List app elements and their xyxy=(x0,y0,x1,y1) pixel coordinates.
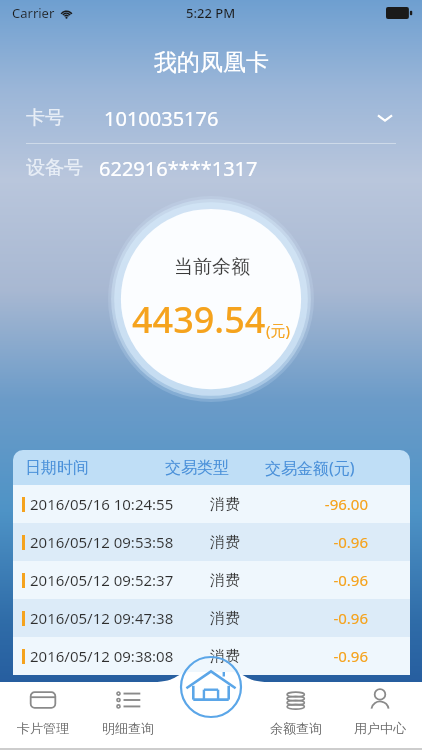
staticText: 卡片管理 xyxy=(17,720,69,736)
staticText: -0.96 xyxy=(280,570,368,590)
button[interactable]: 余额查询 xyxy=(254,672,338,750)
button[interactable]: 用户中心 xyxy=(338,672,422,750)
staticText: -0.96 xyxy=(280,646,368,666)
staticText: 2016/05/12 09:52:37 xyxy=(30,570,210,590)
staticText: 卡号 xyxy=(26,106,64,130)
staticText: -0.96 xyxy=(280,608,368,628)
staticText: 2016/05/12 09:53:58 xyxy=(30,532,210,552)
button[interactable]: 卡号 xyxy=(0,95,422,141)
staticText: 2016/05/16 10:24:55 xyxy=(30,494,210,514)
staticText: 交易金额(元) xyxy=(265,457,410,479)
staticText: 1010035176 xyxy=(104,105,219,132)
staticText: 交易类型 xyxy=(165,458,265,478)
staticText: 设备号 xyxy=(26,156,83,180)
button[interactable]: Home xyxy=(178,654,244,720)
staticText: 消费 xyxy=(210,495,280,514)
button[interactable]: 2016/05/12 09:52:37 xyxy=(13,561,410,599)
staticText: 4439.54 xyxy=(132,295,266,344)
button[interactable]: 2016/05/12 09:53:58 xyxy=(13,523,410,561)
staticText: -96.00 xyxy=(280,494,368,514)
staticText: 消费 xyxy=(210,533,280,552)
staticText: 消费 xyxy=(210,571,280,590)
button[interactable]: 2016/05/12 09:47:38 xyxy=(13,599,410,637)
staticText: 2016/05/12 09:47:38 xyxy=(30,608,210,628)
staticText: 当前余额 xyxy=(174,255,250,279)
staticText: 消费 xyxy=(210,609,280,628)
button[interactable]: 2016/05/12 09:38:08 xyxy=(13,637,410,675)
staticText: 用户中心 xyxy=(354,720,406,736)
button[interactable]: 卡片管理 xyxy=(0,672,85,750)
staticText: (元) xyxy=(266,320,291,340)
staticText: 余额查询 xyxy=(270,720,322,736)
button[interactable]: 明细查询 xyxy=(85,672,170,750)
button[interactable]: 2016/05/16 10:24:55 xyxy=(13,485,410,523)
staticText: 日期时间 xyxy=(25,458,165,478)
staticText: 5:22 PM xyxy=(186,4,236,22)
staticText: 明细查询 xyxy=(102,720,154,736)
staticText: 我的凤凰卡 xyxy=(154,48,269,77)
staticText: 622916****1317 xyxy=(99,155,258,182)
other: Expand card list xyxy=(374,107,396,129)
staticText: 消费 xyxy=(210,647,280,666)
staticText: -0.96 xyxy=(280,532,368,552)
staticText: 2016/05/12 09:38:08 xyxy=(30,646,210,666)
staticText: Carrier xyxy=(12,4,55,22)
